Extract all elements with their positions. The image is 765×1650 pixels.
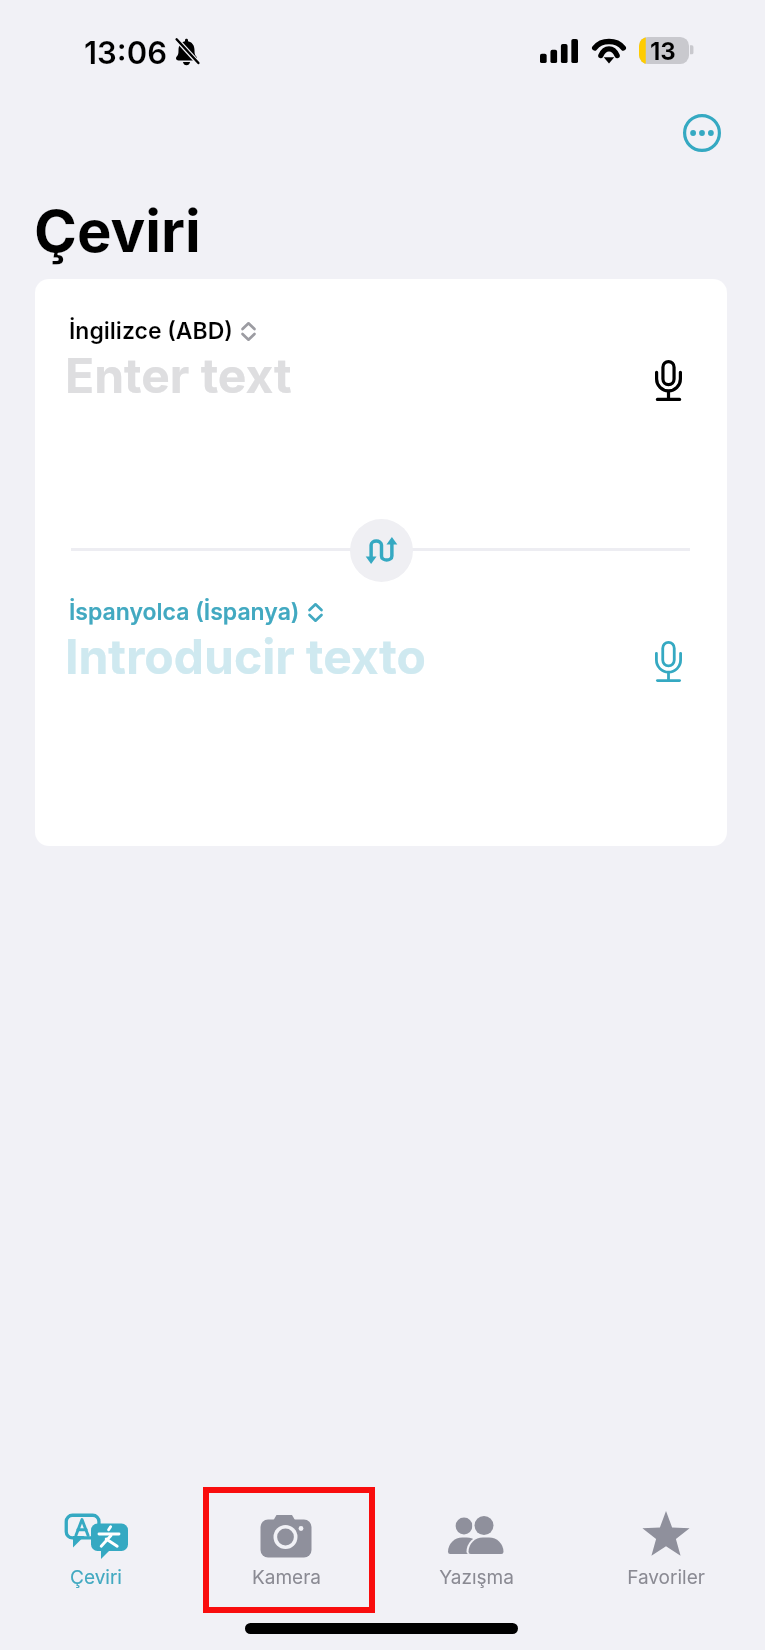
staticText: Introducir texto xyxy=(65,627,426,685)
staticText: Favoriler xyxy=(627,1566,705,1589)
staticText: 13 xyxy=(650,37,676,64)
button[interactable]: Swap languages xyxy=(350,519,413,582)
button[interactable]: Çeviri xyxy=(0,1487,191,1613)
staticText: Enter text xyxy=(65,346,292,404)
button[interactable]: More options xyxy=(679,110,725,156)
button[interactable]: Kamera xyxy=(191,1487,381,1613)
staticText: İspanyolca (İspanya) xyxy=(69,598,300,626)
staticText: Çeviri xyxy=(70,1566,122,1589)
button[interactable]: Yazışma xyxy=(381,1487,571,1613)
button[interactable]: İspanyolca (İspanya) xyxy=(69,598,323,626)
staticText: İngilizce (ABD) xyxy=(69,317,233,345)
button[interactable]: Favoriler xyxy=(571,1487,761,1613)
staticText: Yazışma xyxy=(439,1566,514,1589)
staticText: Çeviri xyxy=(34,196,201,266)
staticText: 13:06 xyxy=(84,34,167,72)
button[interactable]: Dictate source text xyxy=(634,346,702,414)
staticText: Kamera xyxy=(252,1566,321,1589)
button[interactable]: İngilizce (ABD) xyxy=(69,317,256,345)
button[interactable]: Dictate target text xyxy=(634,627,702,695)
